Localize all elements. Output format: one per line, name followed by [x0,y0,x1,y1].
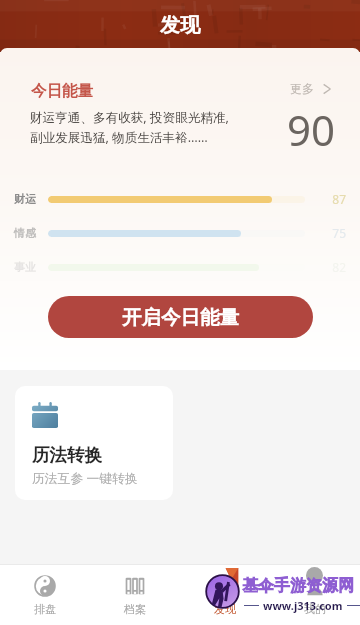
staticText: 事业 [14,260,48,274]
button[interactable]: Profile [270,565,360,625]
staticText: 情感 [14,226,48,240]
staticText: 财运亨通、多有收获, 投资眼光精准, [30,109,229,126]
staticText: 历法转换 [32,444,102,466]
staticText: 档案 [124,602,146,616]
staticText: 排盘 [34,602,56,616]
button[interactable]: 更多 [290,81,333,96]
staticText: 发现 [160,13,200,38]
other: Archive [124,575,146,597]
button[interactable]: 历法转换 [15,386,173,500]
staticText: 75 [305,225,346,241]
staticText: 87 [305,191,346,207]
staticText: 发现 [214,602,236,616]
other: Charts [34,575,56,597]
button[interactable]: Discover [180,565,270,625]
button[interactable]: Archive [90,565,180,625]
button[interactable]: Charts [0,565,90,625]
button[interactable]: 开启今日能量 [48,296,313,338]
staticText: 基伞手游资源网 [242,576,354,596]
staticText: 副业发展迅猛, 物质生活丰裕…… [30,129,208,146]
staticText: 90 [287,101,336,158]
staticText: 今日能量 [31,81,93,101]
staticText: 财运 [14,192,48,206]
staticText: 开启今日能量 [122,305,239,330]
staticText: www.j313.com [263,598,343,613]
staticText: 更多 [290,81,314,96]
other: Discover [214,575,236,597]
other: Profile [304,575,326,597]
staticText: 我的 [304,602,326,616]
staticText: 历法互参 一键转换 [32,469,138,486]
